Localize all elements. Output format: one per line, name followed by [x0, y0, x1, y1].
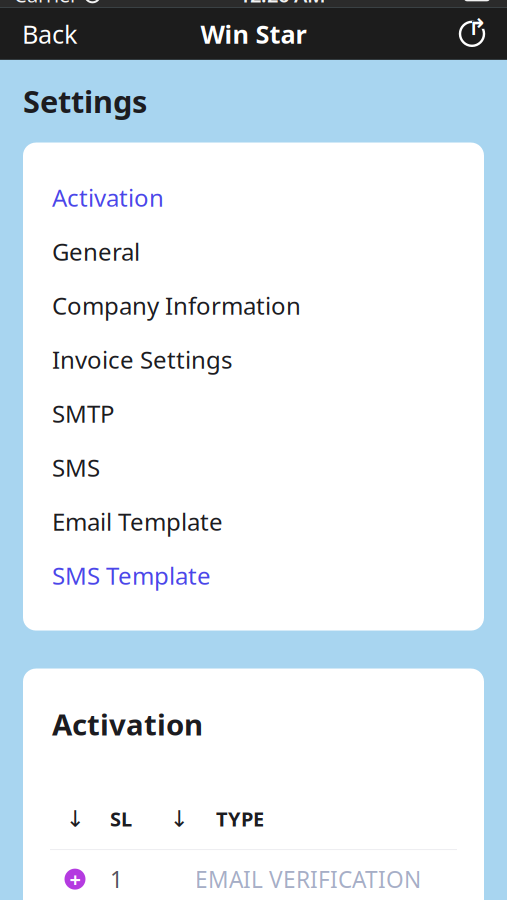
button[interactable]: SMTP	[23, 387, 484, 441]
staticText: General	[52, 236, 140, 267]
staticText: +	[69, 866, 80, 892]
staticText: ↓	[169, 806, 188, 832]
button[interactable]: Sort type	[162, 806, 196, 832]
staticText: Back	[22, 17, 78, 51]
button[interactable]: Invoice Settings	[23, 333, 484, 387]
button[interactable]: Sort	[58, 806, 92, 832]
button[interactable]: Add	[58, 868, 92, 890]
staticText: Activation	[52, 705, 203, 744]
button[interactable]: Company Information	[23, 279, 484, 333]
button[interactable]: Refresh	[437, 8, 507, 60]
button[interactable]: Activation	[23, 171, 484, 225]
staticText: Settings	[23, 81, 147, 121]
staticText: Company Information	[52, 290, 301, 321]
staticText: 12:26 AM	[239, 0, 326, 8]
staticText: Carrier	[14, 0, 78, 8]
staticText: SL	[110, 805, 132, 832]
button[interactable]: General	[23, 225, 484, 279]
staticText: SMTP	[52, 398, 115, 429]
staticText: Win Star	[200, 17, 306, 51]
staticText: Invoice Settings	[52, 344, 232, 375]
staticText: ↓	[65, 806, 84, 832]
staticText: SMS	[52, 452, 100, 483]
staticText: EMAIL VERIFICATION	[195, 864, 421, 894]
staticText: SMS Template	[52, 560, 211, 591]
staticText: Activation	[52, 182, 164, 213]
staticText: ↱	[468, 14, 487, 40]
staticText: Email Template	[52, 506, 223, 537]
button[interactable]: Back	[0, 8, 100, 60]
button[interactable]: Email Template	[23, 495, 484, 549]
button[interactable]: SMS Template	[23, 549, 484, 603]
button[interactable]: SMS	[23, 441, 484, 495]
staticText: TYPE	[216, 805, 264, 832]
staticText: 1	[110, 864, 123, 894]
